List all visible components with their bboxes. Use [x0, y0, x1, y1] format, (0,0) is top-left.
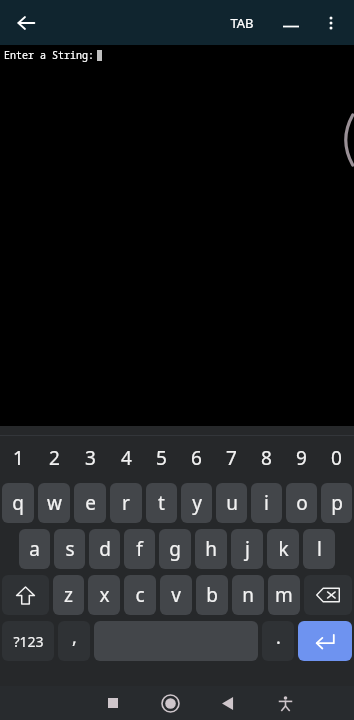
button[interactable]: f: [124, 529, 155, 569]
staticText: c: [135, 582, 145, 608]
button[interactable]: h: [195, 529, 227, 569]
staticText: m: [275, 582, 293, 608]
button[interactable]: r: [110, 483, 142, 523]
button[interactable]: u: [216, 483, 247, 523]
button[interactable]: y: [181, 483, 212, 523]
button[interactable]: e: [74, 483, 106, 523]
staticText: 1: [13, 445, 24, 471]
button[interactable]: i: [251, 483, 282, 523]
button[interactable]: Home: [153, 686, 187, 720]
button[interactable]: ,: [58, 621, 90, 661]
button[interactable]: c: [124, 575, 156, 615]
button[interactable]: Accessibility: [268, 686, 302, 720]
staticText: k: [278, 536, 289, 562]
staticText: n: [242, 582, 254, 608]
staticText: 0: [331, 445, 342, 471]
staticText: q: [12, 490, 24, 516]
staticText: b: [206, 582, 218, 608]
button[interactable]: 6: [179, 436, 214, 480]
button[interactable]: m: [268, 575, 300, 615]
button[interactable]: w: [38, 483, 70, 523]
staticText: z: [64, 582, 73, 608]
button[interactable]: l: [303, 529, 335, 569]
staticText: 6: [191, 445, 202, 471]
staticText: 2: [49, 445, 60, 471]
button[interactable]: d: [89, 529, 120, 569]
staticText: w: [47, 490, 62, 516]
button[interactable]: s: [54, 529, 85, 569]
staticText: l: [317, 536, 322, 562]
button[interactable]: n: [232, 575, 264, 615]
button[interactable]: q: [2, 483, 34, 523]
button[interactable]: 8: [249, 436, 284, 480]
button[interactable]: TAB: [224, 3, 260, 43]
staticText: 5: [156, 445, 167, 471]
button[interactable]: v: [160, 575, 192, 615]
staticText: ?123: [13, 632, 44, 651]
button[interactable]: 7: [214, 436, 249, 480]
staticText: f: [136, 536, 143, 562]
staticText: t: [158, 490, 165, 516]
button[interactable]: o: [286, 483, 317, 523]
button[interactable]: j: [231, 529, 263, 569]
staticText: r: [122, 490, 130, 516]
staticText: s: [65, 536, 75, 562]
button[interactable]: x: [88, 575, 120, 615]
staticText: i: [264, 490, 269, 516]
button[interactable]: Back: [211, 686, 245, 720]
staticText: o: [296, 490, 308, 516]
button[interactable]: b: [196, 575, 228, 615]
button[interactable]: g: [159, 529, 191, 569]
button[interactable]: k: [267, 529, 299, 569]
button[interactable]: Backspace: [304, 575, 352, 615]
button[interactable]: 0: [319, 436, 354, 480]
button[interactable]: 5: [144, 436, 179, 480]
button[interactable]: 9: [284, 436, 319, 480]
button[interactable]: t: [146, 483, 177, 523]
button[interactable]: Shift: [2, 575, 49, 615]
button[interactable]: p: [321, 483, 352, 523]
staticText: a: [29, 536, 40, 562]
staticText: e: [85, 490, 96, 516]
staticText: .: [276, 625, 281, 650]
staticText: ,: [72, 625, 77, 650]
button[interactable]: z: [53, 575, 84, 615]
staticText: Enter a String:: [1, 48, 97, 62]
button[interactable]: a: [19, 529, 50, 569]
staticText: TAB: [230, 14, 254, 32]
staticText: v: [171, 582, 181, 608]
button[interactable]: More options: [314, 6, 348, 40]
button[interactable]: Minimize: [274, 6, 308, 40]
staticText: x: [99, 582, 110, 608]
button[interactable]: .: [262, 621, 294, 661]
button[interactable]: Recents: [96, 686, 130, 720]
button[interactable]: 4: [108, 436, 144, 480]
staticText: y: [192, 490, 202, 516]
staticText: j: [245, 536, 250, 562]
staticText: 7: [226, 445, 237, 471]
button[interactable]: ?123: [2, 621, 54, 661]
button[interactable]: 1: [0, 436, 36, 480]
staticText: 4: [121, 445, 132, 471]
staticText: 8: [261, 445, 272, 471]
staticText: p: [331, 490, 343, 516]
staticText: 3: [85, 445, 96, 471]
button[interactable]: Back: [8, 5, 44, 41]
button[interactable]: 2: [36, 436, 72, 480]
button[interactable]: Enter: [298, 621, 352, 661]
staticText: u: [226, 490, 238, 516]
staticText: d: [99, 536, 111, 562]
button[interactable]: 3: [72, 436, 108, 480]
staticText: 9: [296, 445, 307, 471]
staticText: g: [169, 536, 181, 562]
staticText: h: [205, 536, 217, 562]
